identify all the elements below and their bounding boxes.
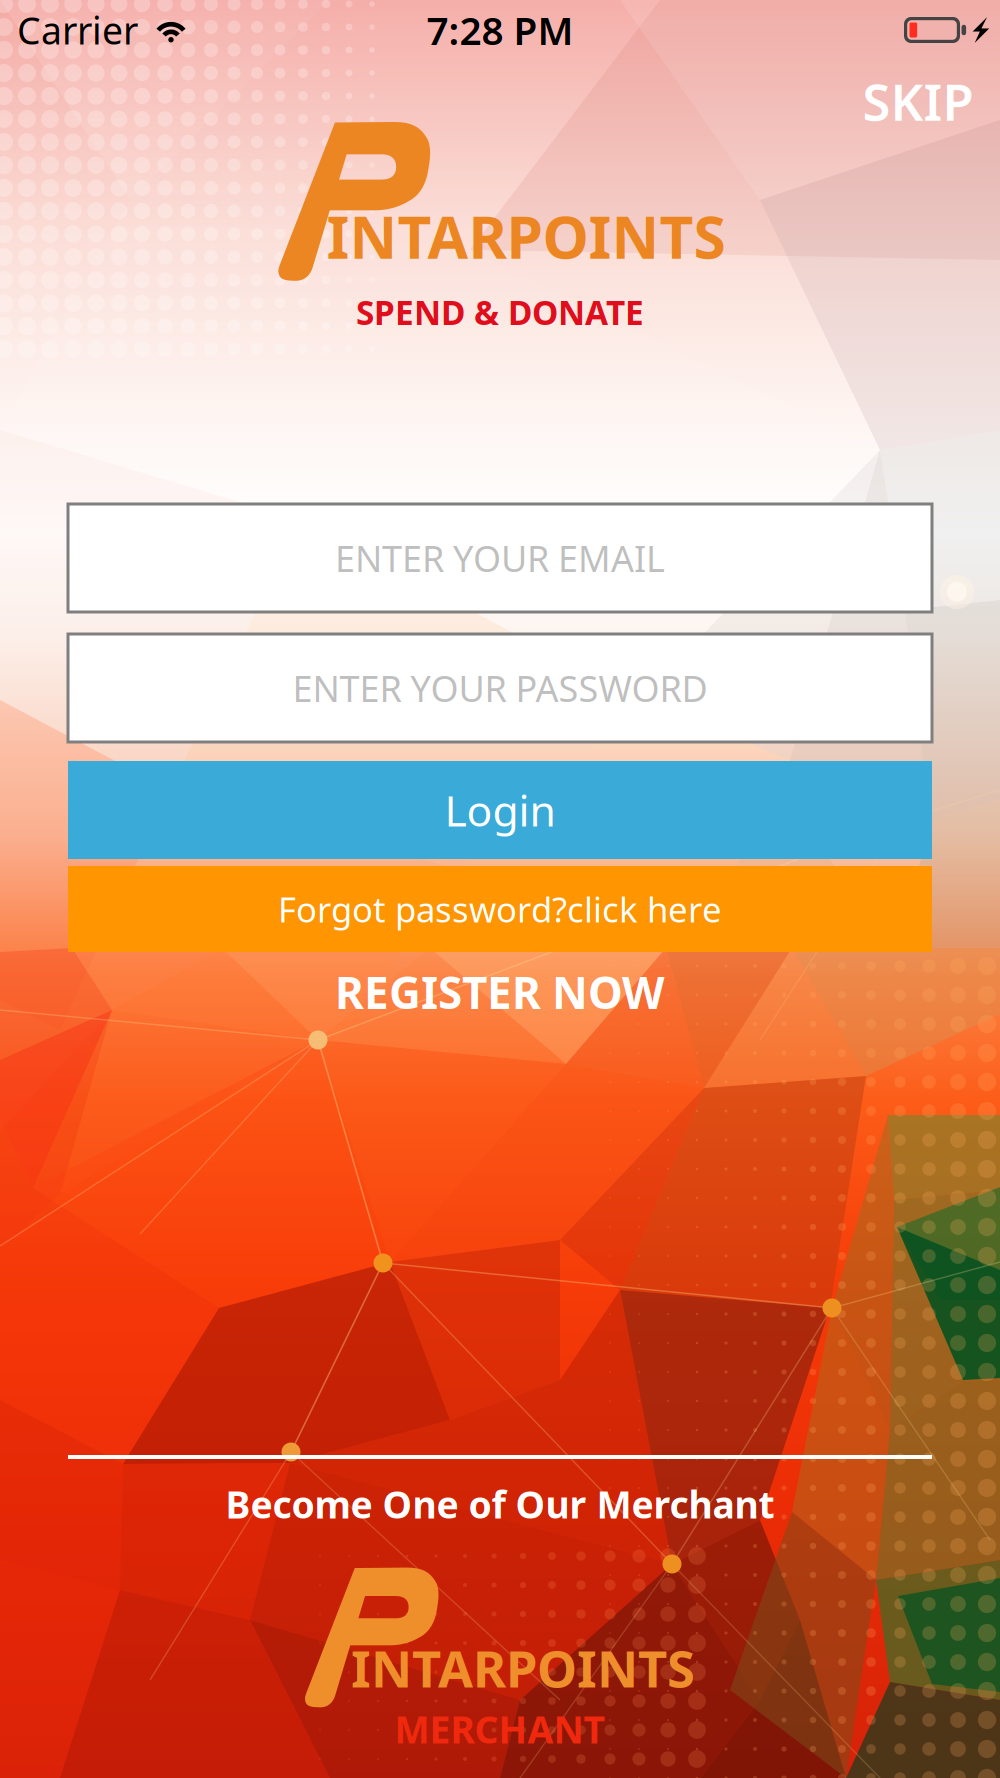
button[interactable]: REGISTER NOW [311,953,689,1031]
staticText: SKIP [862,67,973,135]
staticText: Carrier [17,5,138,55]
staticText: MERCHANT [394,1704,605,1754]
staticText: SPEND & DONATE [356,290,644,334]
button[interactable]: SKIP [844,55,991,147]
staticText: 7:28 PM [426,4,573,56]
staticText: Become One of Our Merchant [225,1479,774,1529]
staticText: ENTER YOUR PASSWORD [292,664,707,712]
button[interactable]: Login [68,761,932,859]
staticText: Login [444,782,555,838]
staticText: Forgot password?click here [278,886,722,932]
staticText: INTARPOINTS [326,197,725,275]
button[interactable]: Forgot password?click here [68,866,932,952]
staticText: INTARPOINTS [351,1634,695,1702]
staticText: REGISTER NOW [335,963,665,1021]
staticText: ENTER YOUR EMAIL [335,534,665,582]
